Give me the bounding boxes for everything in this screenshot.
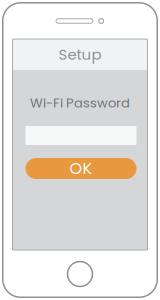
staticText: Setup — [58, 44, 101, 65]
staticText: OK — [69, 157, 92, 180]
staticText: Wi-Fi Password — [30, 94, 130, 112]
button[interactable]: OK — [25, 158, 136, 179]
